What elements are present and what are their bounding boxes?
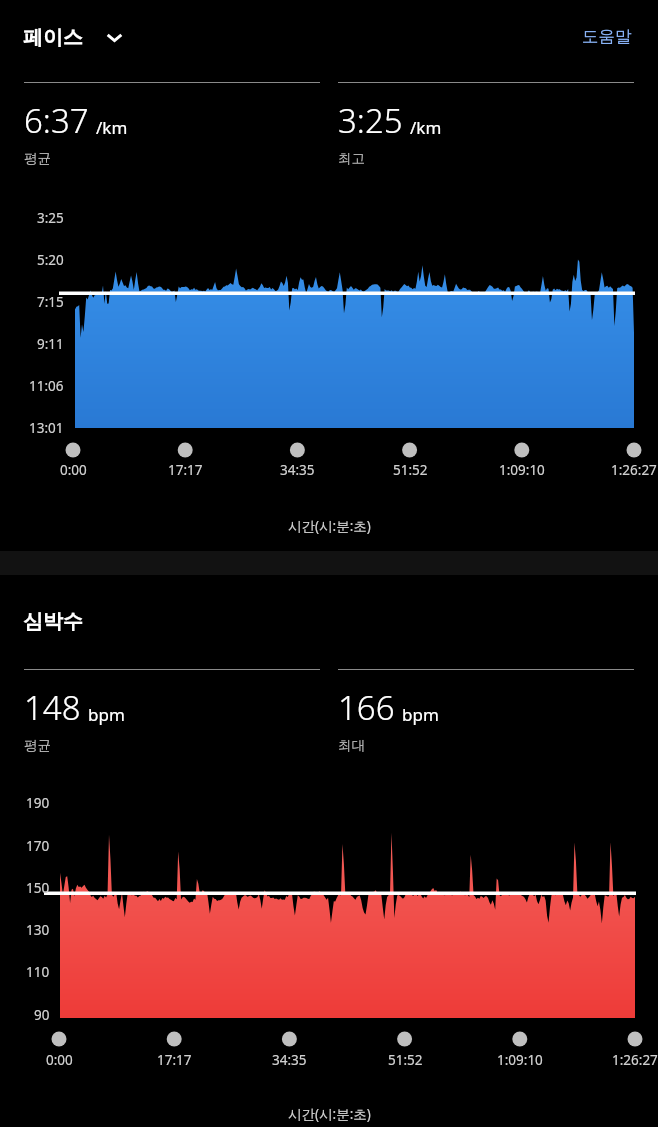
staticText: 평균 (24, 150, 51, 167)
staticText: 51:52 (388, 1051, 423, 1069)
staticText: bpm (402, 703, 439, 726)
staticText: 0:00 (60, 461, 87, 479)
staticText: /km (96, 116, 128, 139)
button[interactable]: 페이스 (23, 22, 135, 52)
staticText: 166 (338, 685, 395, 730)
staticText: 17:17 (168, 461, 203, 479)
staticText: bpm (88, 703, 125, 726)
staticText: 148 (24, 685, 81, 730)
staticText: 1:09:10 (499, 461, 545, 479)
staticText: 최고 (338, 150, 365, 167)
staticText: 도움말 (582, 26, 632, 47)
staticText: 페이스 (23, 25, 83, 50)
staticText: 3:25 (338, 98, 403, 143)
staticText: 1:09:10 (497, 1051, 543, 1069)
button[interactable]: 도움말 (576, 20, 638, 53)
button[interactable]: 166 (338, 669, 634, 754)
staticText: 170 (26, 837, 50, 855)
staticText: 51:52 (393, 461, 428, 479)
staticText: 9:11 (37, 335, 64, 353)
staticText: 심박수 (23, 609, 83, 634)
staticText: 110 (26, 963, 50, 981)
staticText: 3:25 (37, 209, 64, 227)
staticText: 13:01 (29, 419, 64, 437)
staticText: 1:26:27 (612, 1051, 658, 1069)
staticText: 190 (26, 794, 50, 812)
staticText: 시간(시:분:초) (288, 517, 371, 535)
staticText: /km (410, 116, 442, 139)
staticText: 90 (34, 1006, 50, 1024)
staticText: 5:20 (37, 251, 64, 269)
staticText: 시간(시:분:초) (288, 1105, 371, 1123)
staticText: 34:35 (280, 461, 315, 479)
staticText: 평균 (24, 737, 51, 754)
staticText: 6:37 (24, 98, 89, 143)
staticText: 150 (26, 879, 50, 897)
staticText: 17:17 (157, 1051, 192, 1069)
staticText: 11:06 (29, 377, 64, 395)
button[interactable]: 148 (24, 669, 320, 754)
button[interactable]: 6:37 (24, 82, 320, 167)
other: Change metric (99, 22, 129, 52)
staticText: 7:15 (37, 293, 64, 311)
staticText: 130 (26, 921, 50, 939)
staticText: 1:26:27 (611, 461, 657, 479)
staticText: 34:35 (272, 1051, 307, 1069)
staticText: 0:00 (46, 1051, 73, 1069)
staticText: 최대 (338, 737, 365, 754)
button[interactable]: 3:25 (338, 82, 634, 167)
